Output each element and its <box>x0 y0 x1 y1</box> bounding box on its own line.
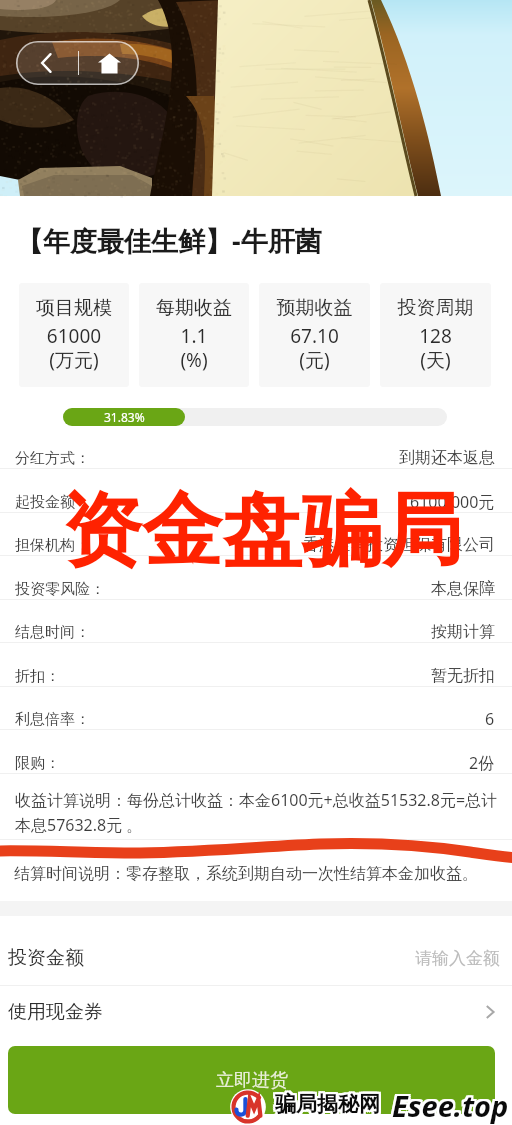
staticText: 128 <box>380 323 491 349</box>
staticText: 请输入金额 <box>415 948 500 969</box>
staticText: 利息倍率： <box>15 710 90 729</box>
staticText: 到期还本返息 <box>399 448 495 468</box>
staticText: Esee.top <box>390 1088 507 1125</box>
button[interactable]: 投资金额 <box>0 931 512 985</box>
staticText: Esee.top <box>392 1084 509 1123</box>
staticText: 1.1 <box>139 323 249 349</box>
staticText: 67.10 <box>259 323 370 349</box>
staticText: 骗局揭秘网 <box>275 1091 380 1117</box>
staticText: 分红方式： <box>15 449 90 468</box>
staticText: 起投金额： <box>15 493 90 512</box>
staticText: Esee.top <box>394 1086 511 1125</box>
staticText: 61000 <box>19 323 129 349</box>
button[interactable]: Back <box>16 41 78 85</box>
staticText: (万元) <box>19 347 129 373</box>
staticText: 每期收益 <box>139 296 249 320</box>
staticText: 项目规模 <box>19 296 129 320</box>
staticText: Esee.top <box>394 1088 511 1125</box>
staticText: 预期收益 <box>259 296 370 320</box>
staticText: 资金盘骗局 <box>62 481 462 582</box>
staticText: 结算时间说明：零存整取，系统到期自动一次性结算本金加收益。 <box>14 864 478 884</box>
staticText: 骗局揭秘网 <box>275 1089 380 1115</box>
staticText: 投资零风险： <box>15 580 105 599</box>
staticText: Esee.top <box>390 1084 507 1123</box>
other: More <box>480 1002 500 1022</box>
staticText: 骗局揭秘网 <box>273 1089 378 1115</box>
staticText: 暂无折扣 <box>431 666 495 686</box>
staticText: 骗局揭秘网 <box>277 1089 382 1115</box>
staticText: 投资周期 <box>380 296 491 320</box>
staticText: 立即进货 <box>216 1069 288 1092</box>
staticText: 骗局揭秘网 <box>273 1093 378 1119</box>
staticText: Esee.top <box>392 1086 509 1125</box>
button[interactable]: Home <box>79 41 139 85</box>
button[interactable]: 立即进货 <box>8 1046 495 1114</box>
staticText: 【年度最佳生鲜】-牛肝菌 <box>16 222 322 259</box>
staticText: 骗局揭秘网 <box>273 1091 378 1117</box>
staticText: 骗局揭秘网 <box>277 1093 382 1119</box>
staticText: Esee.top <box>392 1086 509 1125</box>
staticText: (天) <box>380 347 491 373</box>
staticText: (元) <box>259 347 370 373</box>
staticText: 骗局揭秘网 <box>275 1093 380 1119</box>
staticText: 骗局揭秘网 <box>277 1091 382 1117</box>
staticText: 6100.000元 <box>410 491 495 513</box>
staticText: 31.83% <box>104 409 145 425</box>
staticText: Esee.top <box>394 1084 511 1123</box>
staticText: 收益计算说明：每份总计收益：本金6100元+总收益51532.8元=总计 本息5… <box>15 789 498 836</box>
staticText: 骗局揭秘网 <box>275 1091 380 1117</box>
staticText: 6 <box>485 708 495 730</box>
staticText: 按期计算 <box>431 622 495 642</box>
button[interactable]: 使用现金券 <box>0 986 512 1038</box>
staticText: 香港金马投资担保有限公司 <box>303 535 495 555</box>
staticText: (%) <box>139 347 249 373</box>
staticText: 2份 <box>469 752 495 774</box>
staticText: 结息时间： <box>15 623 90 642</box>
staticText: 投资金额 <box>8 946 84 970</box>
staticText: Esee.top <box>392 1088 509 1125</box>
staticText: 担保机构： <box>15 536 90 555</box>
staticText: Esee.top <box>390 1086 507 1125</box>
staticText: 限购： <box>15 754 60 773</box>
staticText: 本息保障 <box>431 579 495 599</box>
staticText: 使用现金券 <box>8 1000 103 1024</box>
staticText: 折扣： <box>15 667 60 686</box>
